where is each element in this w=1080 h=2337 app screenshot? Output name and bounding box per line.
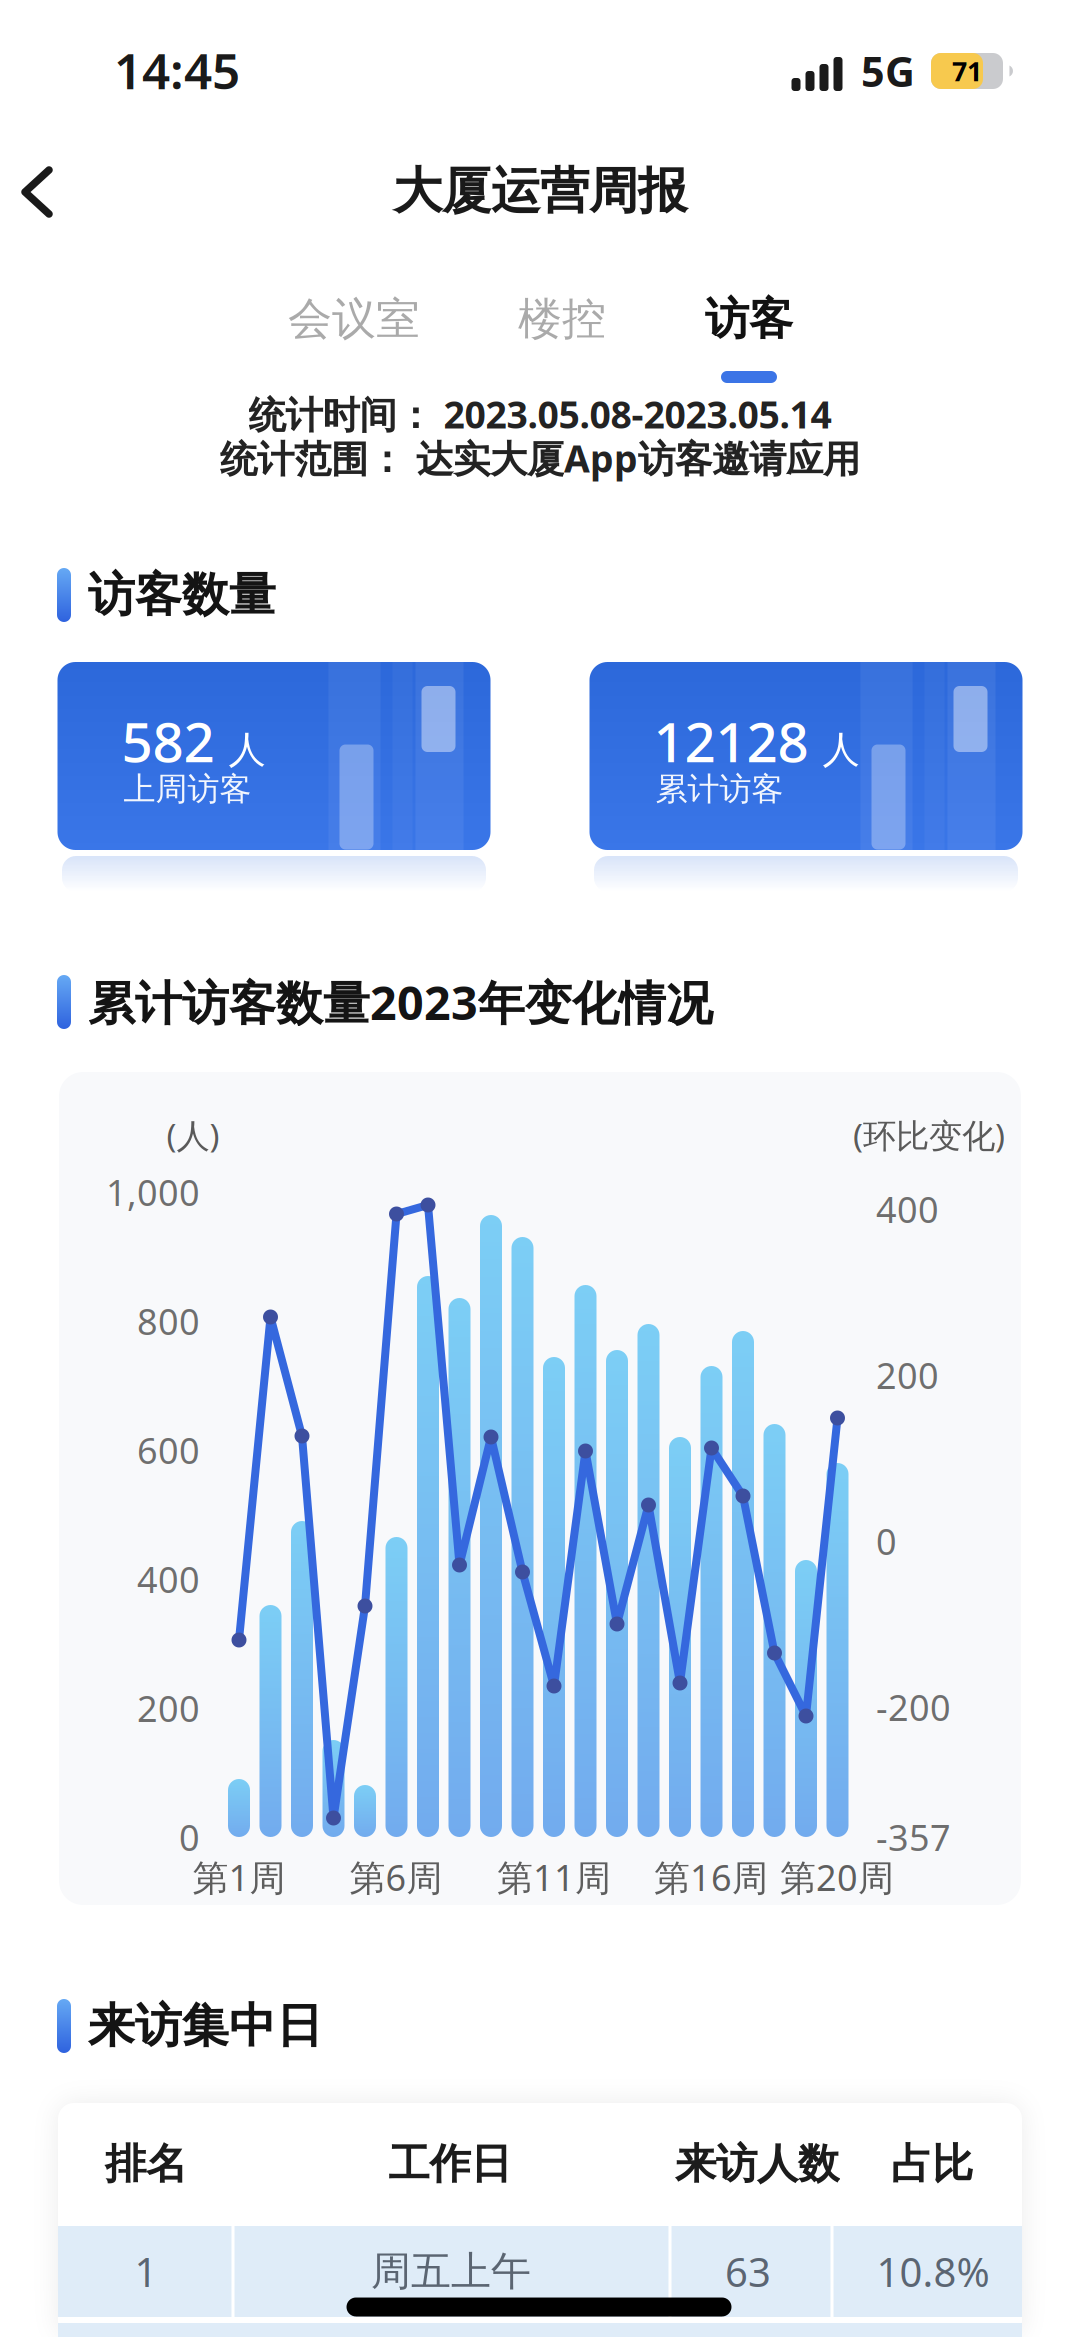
- staticText: 200: [876, 1351, 939, 1399]
- staticText: 大厦运营周报: [393, 161, 687, 221]
- button[interactable]: 楼控: [487, 284, 637, 354]
- staticText: 400: [876, 1185, 939, 1233]
- staticText: 累计访客数量2023年变化情况: [88, 971, 713, 1033]
- staticText: 0: [876, 1517, 897, 1565]
- staticText: 工作日: [388, 2139, 511, 2189]
- staticText: 1: [134, 2245, 157, 2298]
- staticText: 统计时间： 2023.05.08-2023.05.14: [248, 389, 831, 439]
- staticText: 统计范围： 达实大厦App访客邀请应用: [220, 433, 860, 483]
- staticText: 第1周: [192, 1853, 285, 1901]
- staticText: 63: [725, 2245, 771, 2298]
- staticText: 访客数量: [88, 566, 276, 624]
- staticText: 12128: [653, 705, 808, 777]
- staticText: 第20周: [780, 1853, 894, 1901]
- staticText: 来访集中日: [88, 1997, 323, 2055]
- staticText: 第11周: [497, 1853, 611, 1901]
- button[interactable]: Back: [15, 163, 73, 221]
- staticText: 占比: [891, 2139, 973, 2189]
- staticText: 访客: [705, 292, 793, 346]
- staticText: 14:45: [114, 37, 240, 103]
- staticText: 累计访客: [655, 769, 783, 809]
- staticText: 来访人数: [675, 2139, 839, 2189]
- staticText: 周五上午: [371, 2247, 531, 2296]
- staticText: 会议室: [288, 292, 420, 346]
- staticText: 800: [137, 1297, 200, 1345]
- staticText: 楼控: [518, 292, 606, 346]
- staticText: -200: [876, 1683, 951, 1731]
- staticText: -357: [876, 1813, 951, 1861]
- staticText: (人): [166, 1113, 219, 1157]
- staticText: 5G: [861, 44, 915, 98]
- staticText: 上周访客: [123, 769, 251, 809]
- staticText: 200: [137, 1684, 200, 1732]
- staticText: 400: [137, 1555, 200, 1603]
- staticText: 第16周: [654, 1853, 768, 1901]
- button[interactable]: 访客: [674, 284, 824, 354]
- staticText: 人: [228, 727, 265, 773]
- staticText: 1,000: [106, 1168, 200, 1216]
- staticText: 0: [179, 1813, 200, 1861]
- staticText: 第6周: [349, 1853, 442, 1901]
- staticText: 71: [952, 53, 982, 89]
- staticText: 排名: [105, 2139, 187, 2189]
- button[interactable]: 会议室: [259, 284, 449, 354]
- staticText: (环比变化): [853, 1113, 1005, 1157]
- staticText: 582: [121, 705, 214, 777]
- staticText: 10.8%: [876, 2245, 989, 2298]
- staticText: 600: [137, 1426, 200, 1474]
- staticText: 人: [822, 727, 859, 773]
